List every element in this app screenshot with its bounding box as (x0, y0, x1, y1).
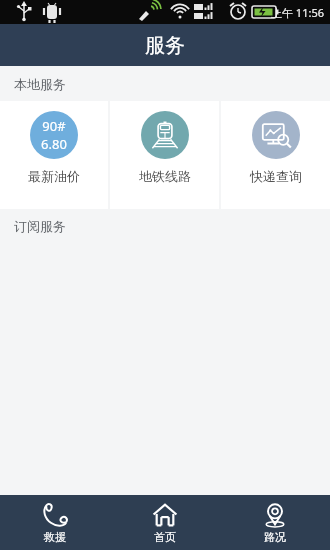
staticText: 订阅服务 (14, 218, 66, 234)
staticText: 最新油价 (28, 168, 80, 184)
staticText: 路况 (264, 530, 286, 544)
button[interactable]: 路况 (220, 495, 330, 550)
button[interactable]: 90# (0, 101, 108, 209)
staticText: 首页 (154, 530, 176, 544)
staticText: 救援 (44, 530, 66, 544)
staticText: 服务 (145, 33, 185, 58)
staticText: 快递查询 (250, 168, 302, 184)
button[interactable]: 救援 (0, 495, 110, 550)
staticText: 90# (42, 117, 66, 135)
button[interactable]: 快递查询 (221, 101, 330, 209)
staticText: 6.80 (41, 135, 67, 153)
staticText: 地铁线路 (139, 168, 191, 184)
staticText: 上午 11:56 (271, 5, 324, 20)
staticText: 本地服务 (14, 76, 66, 92)
button[interactable]: 地铁线路 (110, 101, 219, 209)
button[interactable]: 首页 (110, 495, 220, 550)
